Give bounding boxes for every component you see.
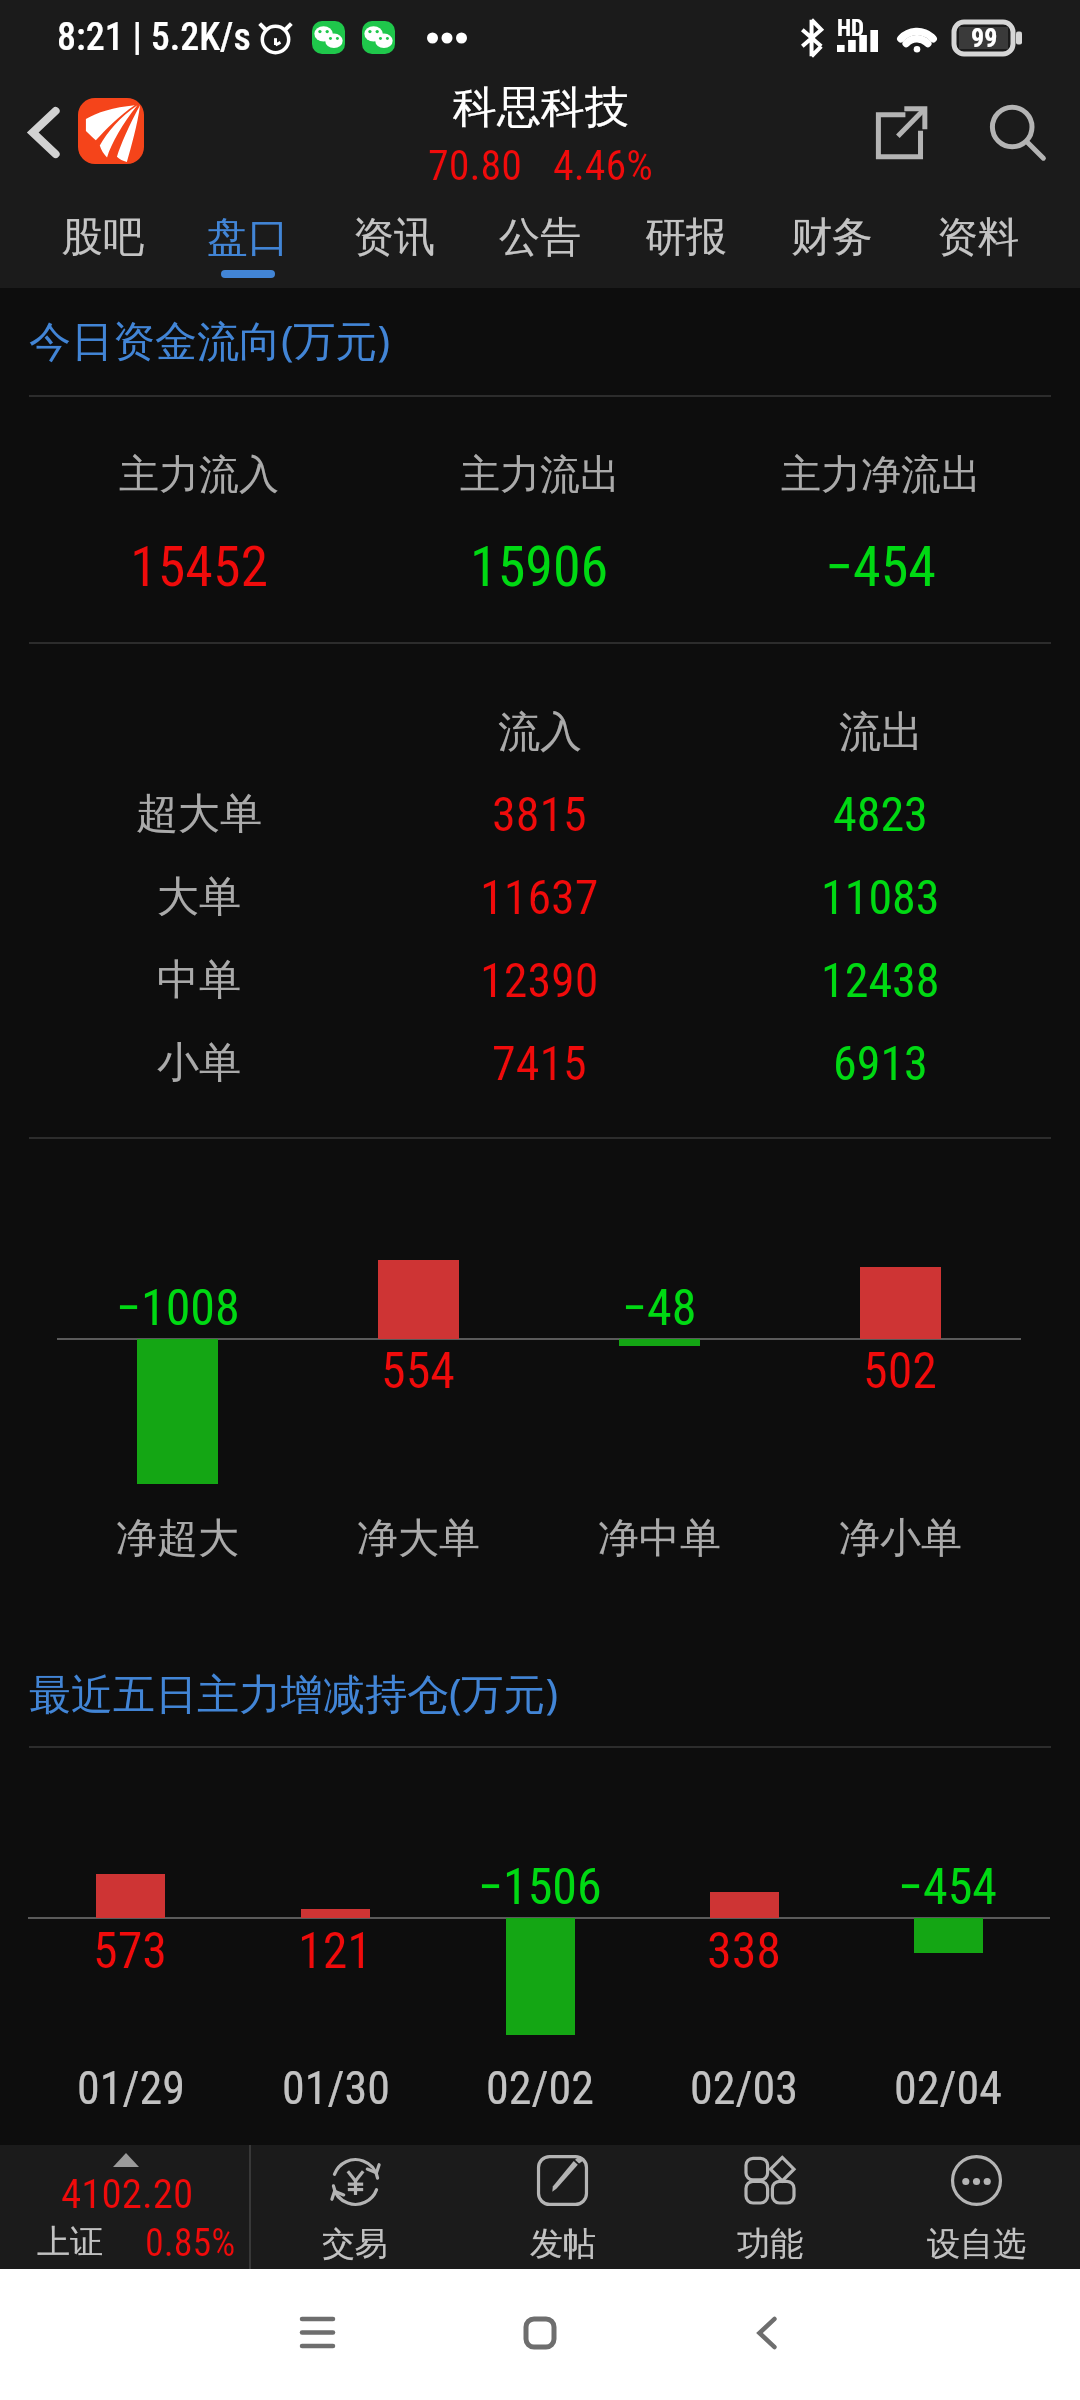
staticText: 99: [971, 23, 998, 53]
staticText: HD: [837, 15, 865, 42]
staticText: 流出: [839, 706, 923, 759]
button[interactable]: 财务: [759, 190, 905, 288]
staticText: 研报: [645, 212, 727, 264]
staticText: 净中单: [598, 1513, 721, 1565]
staticText: 11083: [821, 869, 940, 925]
button[interactable]: 设自选: [873, 2145, 1080, 2269]
staticText: 最近五日主力增减持仓(万元): [29, 1664, 559, 1721]
staticText: 554: [381, 1342, 456, 1401]
staticText: 12390: [480, 952, 599, 1008]
button[interactable]: 资讯: [321, 190, 467, 288]
staticText: 资讯: [353, 212, 435, 264]
staticText: 11637: [480, 869, 599, 925]
staticText: −454: [825, 534, 936, 600]
button[interactable]: 盘口: [175, 190, 321, 288]
staticText: 0.85%: [145, 2221, 236, 2266]
staticText: 小单: [157, 1037, 241, 1090]
staticText: −48: [622, 1279, 697, 1338]
staticText: 4823: [833, 786, 928, 842]
staticText: 02/04: [894, 2061, 1002, 2115]
staticText: 今日资金流向(万元): [29, 311, 391, 368]
staticText: 盘口: [207, 212, 289, 264]
staticText: 15452: [130, 534, 269, 600]
staticText: 股吧: [62, 212, 144, 264]
staticText: 科思科技: [453, 80, 629, 135]
button[interactable]: Search: [966, 75, 1068, 190]
staticText: 净小单: [839, 1513, 962, 1565]
staticText: 发帖: [530, 2223, 596, 2265]
button[interactable]: 发帖: [459, 2145, 666, 2269]
staticText: 01/30: [282, 2061, 390, 2115]
staticText: 大单: [157, 871, 241, 924]
staticText: 121: [298, 1922, 373, 1981]
button[interactable]: Eastmoney home: [78, 98, 144, 164]
staticText: 资料: [937, 212, 1019, 264]
staticText: 8:21 | 5.2K/s: [57, 15, 251, 60]
staticText: 502: [863, 1342, 938, 1401]
button[interactable]: 功能: [666, 2145, 873, 2269]
button[interactable]: Recent apps: [262, 2277, 372, 2387]
staticText: 公告: [499, 212, 581, 264]
staticText: 上证: [37, 2221, 103, 2263]
staticText: −454: [898, 1858, 998, 1917]
button[interactable]: Back: [0, 75, 76, 190]
staticText: 超大单: [136, 788, 262, 841]
staticText: −1008: [116, 1279, 240, 1338]
staticText: 4102.20: [61, 2170, 194, 2218]
staticText: 6913: [833, 1035, 928, 1091]
staticText: 功能: [737, 2223, 803, 2265]
staticText: 573: [93, 1922, 168, 1981]
staticText: 338: [707, 1922, 782, 1981]
staticText: 设自选: [927, 2223, 1026, 2265]
button[interactable]: Home: [485, 2278, 595, 2388]
button[interactable]: Share: [841, 75, 959, 190]
staticText: 中单: [157, 954, 241, 1007]
staticText: 净超大: [116, 1513, 239, 1565]
staticText: 财务: [791, 212, 873, 264]
staticText: 交易: [322, 2223, 388, 2265]
button[interactable]: 4102.20: [0, 2145, 249, 2269]
staticText: 12438: [821, 952, 940, 1008]
button[interactable]: Back: [712, 2278, 822, 2388]
button[interactable]: 股吧: [30, 190, 175, 288]
staticText: 3815: [492, 786, 587, 842]
button[interactable]: 公告: [467, 190, 613, 288]
staticText: 主力流出: [460, 449, 620, 499]
button[interactable]: 交易: [251, 2145, 459, 2269]
staticText: 净大单: [357, 1513, 480, 1565]
staticText: −1506: [478, 1858, 602, 1917]
staticText: 02/03: [690, 2061, 798, 2115]
button[interactable]: 资料: [905, 190, 1051, 288]
staticText: 流入: [498, 706, 582, 759]
staticText: 01/29: [77, 2061, 185, 2115]
staticText: 主力净流出: [781, 449, 981, 499]
staticText: 70.80: [428, 141, 523, 190]
button[interactable]: 研报: [613, 190, 759, 288]
staticText: 15906: [470, 534, 609, 600]
staticText: 主力流入: [119, 449, 279, 499]
staticText: 7415: [492, 1035, 587, 1091]
staticText: 02/02: [486, 2061, 594, 2115]
staticText: 4.46%: [553, 141, 653, 190]
